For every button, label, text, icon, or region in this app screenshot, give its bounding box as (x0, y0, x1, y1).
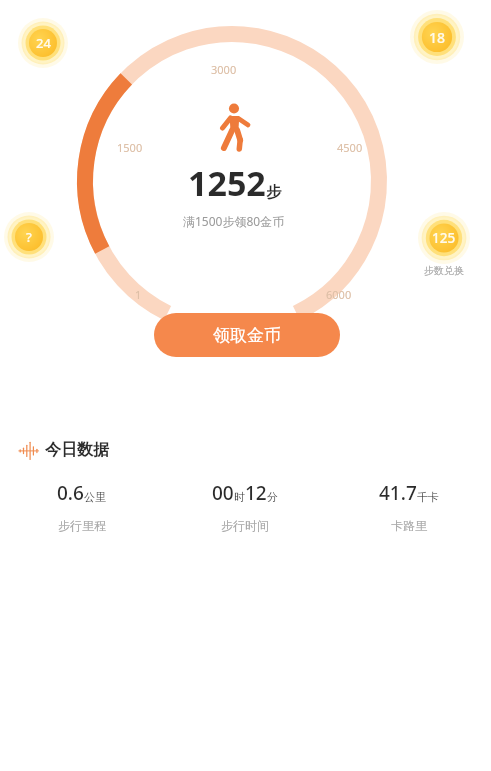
staticText: 步数兑换 (424, 264, 464, 277)
staticText: 满1500步领80金币 (183, 213, 285, 229)
button[interactable]: 24 coins (18, 18, 68, 68)
staticText: 1 (135, 287, 142, 302)
button[interactable]: 今日数据 (18, 440, 109, 460)
staticText: 3000 (211, 62, 237, 77)
staticText: 6000 (326, 287, 352, 302)
button[interactable]: 125 coins (418, 212, 470, 264)
staticText: 0.6 (57, 480, 84, 506)
staticText: 领取金币 (213, 325, 281, 346)
staticText: 步行里程 (58, 518, 106, 533)
button[interactable]: 领取金币 (154, 313, 340, 357)
staticText: 24 (36, 34, 51, 52)
staticText: 公里 (84, 490, 106, 504)
button[interactable]: 00 (163, 480, 327, 533)
staticText: 00 (212, 480, 234, 506)
staticText: 千卡 (417, 490, 439, 504)
staticText: 4500 (337, 140, 363, 155)
button[interactable]: 41.7 (327, 480, 491, 533)
staticText: 卡路里 (391, 518, 427, 533)
staticText: 18 (429, 28, 446, 47)
staticText: 41.7 (379, 480, 417, 506)
staticText: 1500 (117, 140, 143, 155)
staticText: 分 (267, 490, 278, 504)
button[interactable]: 18 coins (410, 10, 464, 64)
button[interactable]: Help (4, 212, 54, 262)
staticText: 125 (432, 229, 456, 247)
staticText: 步 (266, 183, 281, 202)
staticText: 步行时间 (221, 518, 269, 533)
staticText: 今日数据 (45, 440, 109, 460)
button[interactable]: 0.6 (0, 480, 163, 533)
staticText: 1252 (188, 160, 266, 206)
staticText: ? (26, 228, 32, 246)
staticText: 时 (234, 490, 245, 504)
staticText: 12 (245, 480, 267, 506)
